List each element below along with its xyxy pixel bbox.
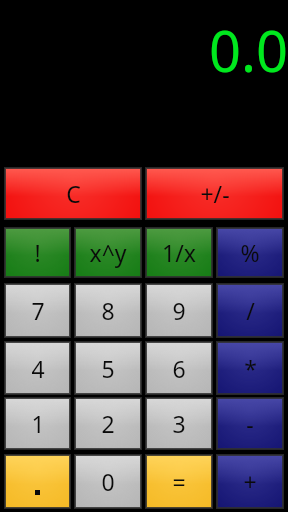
button[interactable]: 1/x <box>146 228 212 277</box>
button[interactable]: - <box>217 398 283 449</box>
button[interactable]: 0 <box>75 455 141 508</box>
staticText: 0.0 <box>208 12 288 88</box>
button[interactable]: C <box>5 168 141 219</box>
button[interactable]: 8 <box>75 284 141 337</box>
button[interactable]: + <box>217 455 283 508</box>
button[interactable]: = <box>146 455 212 508</box>
staticText: % <box>240 237 260 268</box>
button[interactable] <box>5 455 70 508</box>
staticText: 6 <box>172 353 186 384</box>
staticText: = <box>172 466 186 497</box>
staticText: 3 <box>172 408 186 439</box>
button[interactable]: 4 <box>5 342 70 394</box>
staticText: 4 <box>31 353 45 384</box>
staticText: 1/x <box>162 237 196 268</box>
staticText: * <box>244 353 257 384</box>
button[interactable]: * <box>217 342 283 394</box>
staticText: 2 <box>101 408 115 439</box>
staticText: 9 <box>172 295 186 326</box>
button[interactable]: x^y <box>75 228 141 277</box>
button[interactable]: 9 <box>146 284 212 337</box>
button[interactable]: 3 <box>146 398 212 449</box>
button[interactable]: 2 <box>75 398 141 449</box>
staticText: C <box>66 178 81 209</box>
staticText: + <box>243 466 257 497</box>
button[interactable]: / <box>217 284 283 337</box>
staticText: 7 <box>31 295 45 326</box>
staticText: 0 <box>101 466 115 497</box>
button[interactable]: 5 <box>75 342 141 394</box>
staticText: / <box>246 295 255 326</box>
staticText: 8 <box>101 295 115 326</box>
button[interactable]: +/- <box>146 168 283 219</box>
staticText: +/- <box>200 178 230 209</box>
staticText: ! <box>34 237 41 268</box>
button[interactable]: 6 <box>146 342 212 394</box>
staticText: x^y <box>89 237 127 268</box>
staticText: - <box>246 408 254 439</box>
button[interactable]: 7 <box>5 284 70 337</box>
button[interactable]: 1 <box>5 398 70 449</box>
staticText: 5 <box>101 353 115 384</box>
button[interactable]: % <box>217 228 283 277</box>
staticText: 1 <box>31 408 45 439</box>
button[interactable]: ! <box>5 228 70 277</box>
